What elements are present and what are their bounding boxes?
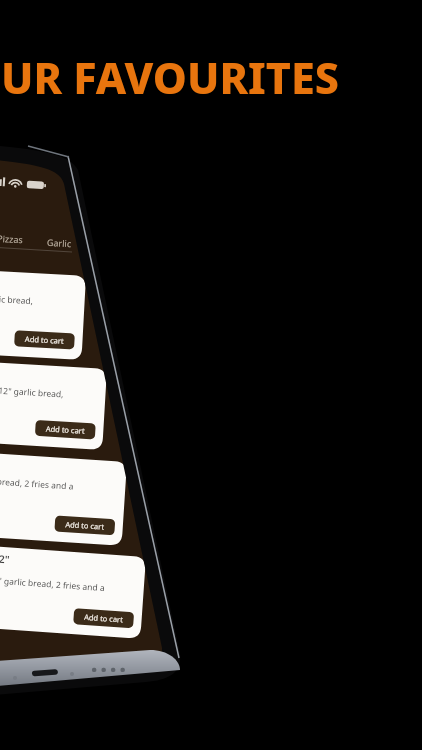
button[interactable]: App preview on phone — [0, 0, 422, 750]
button[interactable]: Your favourites — [0, 0, 422, 130]
